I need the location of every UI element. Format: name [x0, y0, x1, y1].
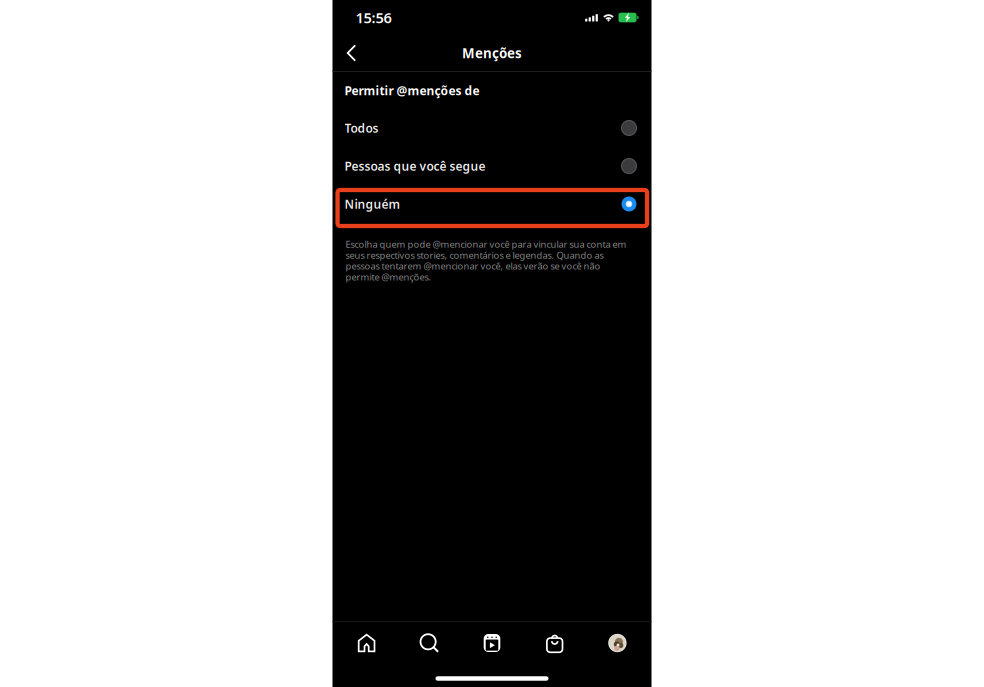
- staticText: Escolha quem pode @mencionar você para v…: [345, 238, 626, 250]
- staticText: Todos: [344, 120, 378, 136]
- button[interactable]: Shop: [523, 622, 586, 664]
- button[interactable]: Search: [398, 622, 461, 664]
- button[interactable]: Home: [335, 622, 398, 664]
- button[interactable]: Todos: [332, 109, 651, 147]
- staticText: Permitir @menções de: [344, 82, 479, 98]
- staticText: permite @menções.: [345, 271, 431, 283]
- staticText: pessoas tentarem @mencionar você, elas v…: [345, 260, 600, 272]
- button[interactable]: Back: [332, 35, 370, 71]
- button[interactable]: Reels: [461, 622, 523, 664]
- staticText: 15:56: [355, 8, 391, 27]
- button[interactable]: Ninguém: [332, 185, 651, 223]
- staticText: Pessoas que você segue: [344, 158, 485, 174]
- button[interactable]: Profile: [586, 622, 649, 664]
- staticText: Menções: [462, 44, 522, 62]
- button[interactable]: Pessoas que você segue: [332, 147, 651, 185]
- staticText: seus respectivos stories, comentários e …: [345, 249, 603, 261]
- staticText: Ninguém: [344, 196, 400, 212]
